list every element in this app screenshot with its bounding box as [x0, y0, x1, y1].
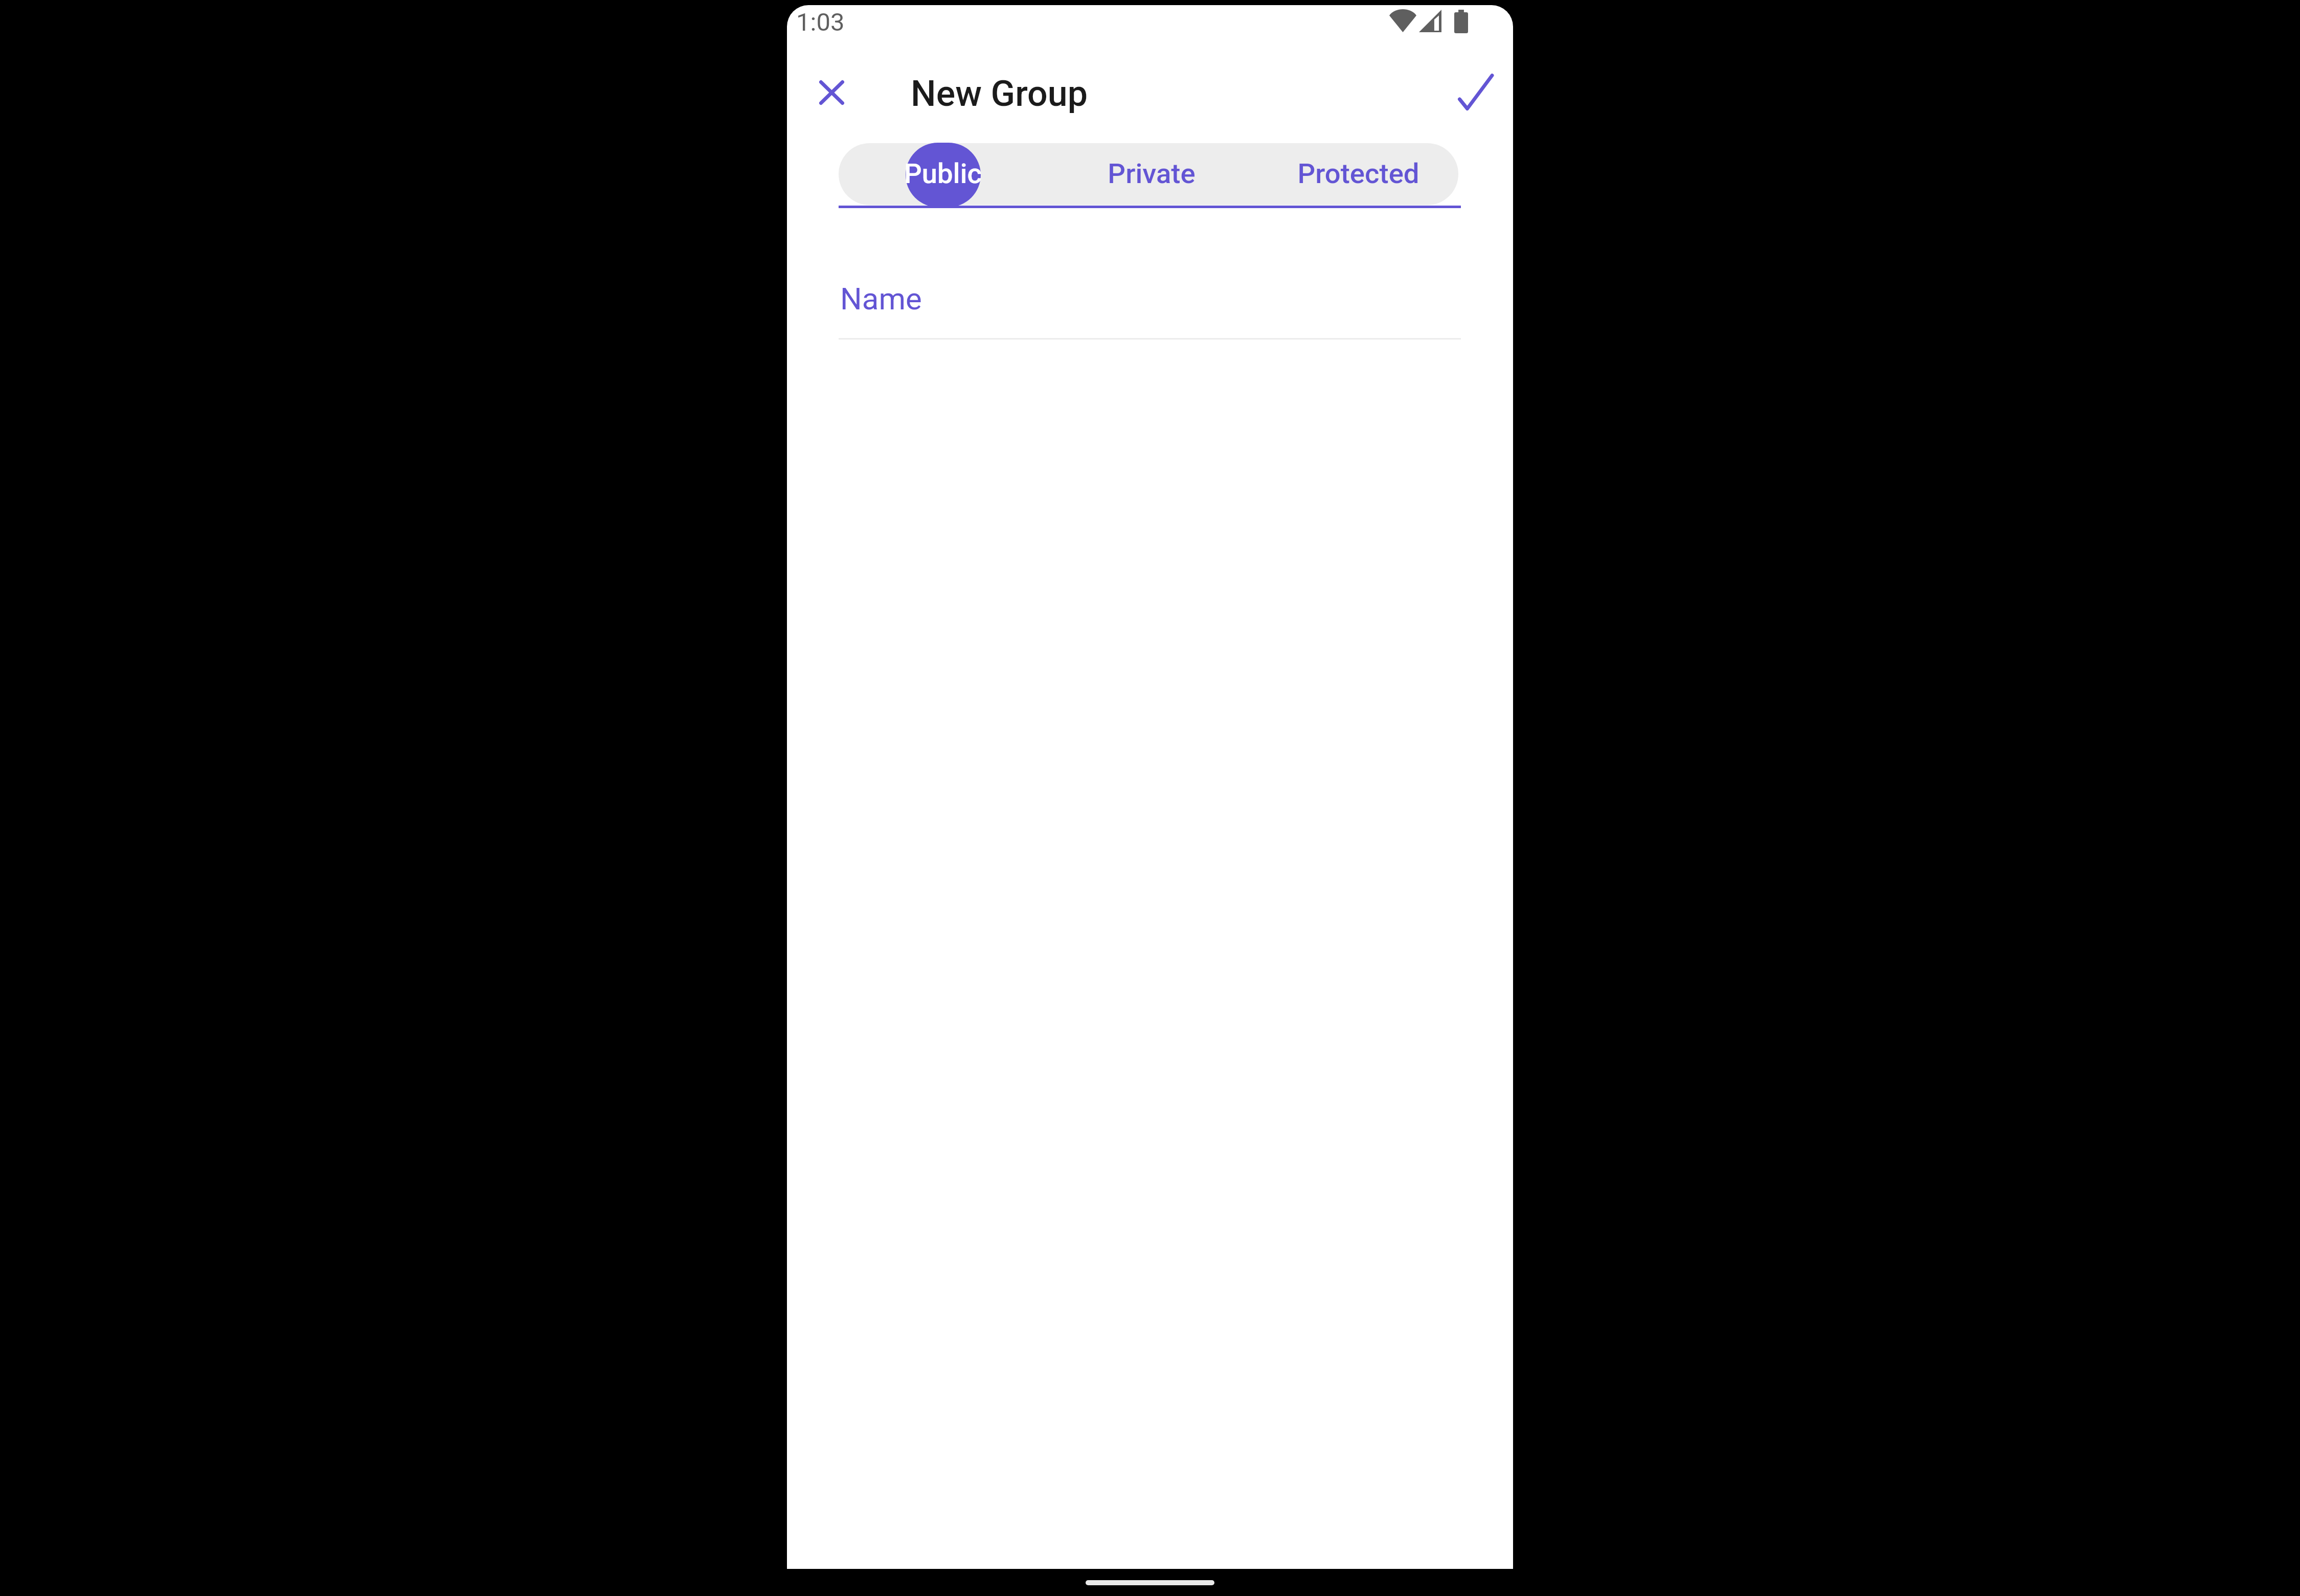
staticText: Protected: [1297, 157, 1419, 190]
button[interactable]: Done: [1447, 66, 1503, 123]
button[interactable]: Private: [1048, 142, 1255, 204]
staticText: Private: [1108, 157, 1196, 190]
staticText: 1:03: [796, 8, 845, 37]
staticText: Name: [840, 281, 922, 317]
button[interactable]: Public: [840, 142, 1046, 204]
button[interactable]: Close: [807, 68, 856, 117]
staticText: New Group: [911, 73, 1088, 115]
button[interactable]: Protected: [1255, 142, 1461, 204]
staticText: Public: [904, 157, 982, 190]
